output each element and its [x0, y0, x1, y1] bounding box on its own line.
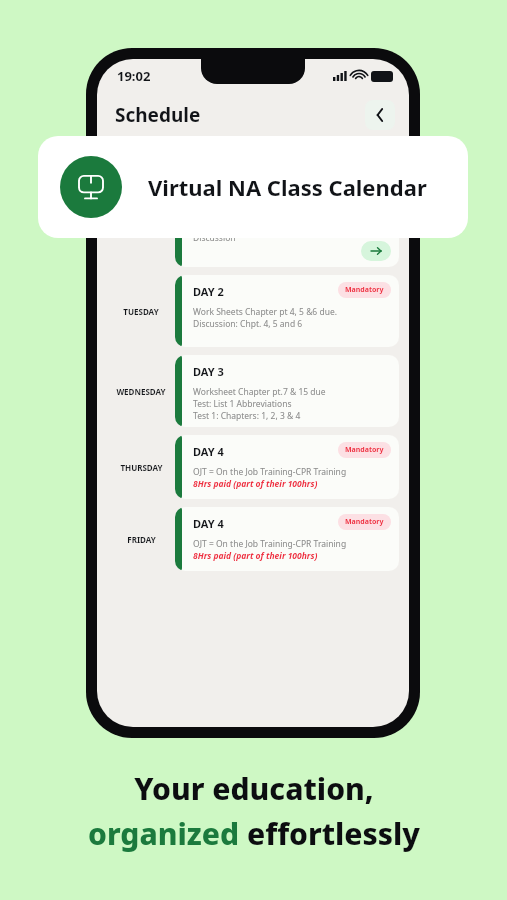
staticText: 8Hrs paid (part of their 100hrs) — [193, 550, 318, 562]
staticText: DAY 3 — [193, 364, 224, 379]
staticText: OJT = On the Job Training-CPR Training — [193, 538, 347, 550]
staticText: Discussion — [193, 232, 236, 244]
button[interactable]: DAY 2 — [175, 275, 399, 347]
staticText: DAY 2 — [193, 284, 224, 299]
button[interactable]: DAY 1 — [175, 189, 399, 267]
button[interactable]: Virtual NA Class Calendar — [38, 136, 468, 238]
button[interactable]: Back — [365, 100, 395, 130]
staticText: DAY 4 — [193, 444, 224, 459]
button[interactable]: DAY 4 — [175, 435, 399, 499]
staticText: DAY 4 — [193, 516, 224, 531]
button[interactable]: DAY 3 — [175, 355, 399, 427]
button[interactable]: DAY 4 — [175, 507, 399, 571]
staticText: Work Sheets Chapter pt 4, 5 &6 due. — [193, 306, 337, 318]
staticText: Test: List 1 Abbreviations — [193, 398, 292, 410]
button[interactable]: WEEK 1 — [111, 138, 160, 176]
staticText: Schedule — [115, 102, 201, 128]
staticText: WEDNESDAY — [116, 386, 166, 397]
staticText: 19:02 — [117, 67, 151, 85]
staticText: Discussion: Chpt. 4, 5 and 6 — [193, 318, 303, 330]
staticText: THURSDAY — [120, 462, 163, 473]
staticText: Your education, — [134, 768, 374, 809]
button[interactable]: Open day — [361, 241, 391, 261]
staticText: Worksheet Chapter pt.7 & 15 due — [193, 386, 326, 398]
staticText: Mandatory — [345, 517, 384, 527]
staticText: OJT = On the Job Training-CPR Training — [193, 466, 347, 478]
staticText: FRIDAY — [127, 534, 156, 545]
staticText: Virtual NA Class Calendar — [148, 172, 427, 202]
staticText: TUESDAY — [123, 306, 159, 317]
staticText: Mandatory — [345, 285, 384, 295]
staticText: Test 1: Chapters: 1, 2, 3 & 4 — [193, 410, 301, 422]
staticText: organized effortlessly — [88, 813, 420, 854]
staticText: Mandatory — [345, 445, 384, 455]
staticText: 8Hrs paid (part of their 100hrs) — [193, 478, 318, 490]
